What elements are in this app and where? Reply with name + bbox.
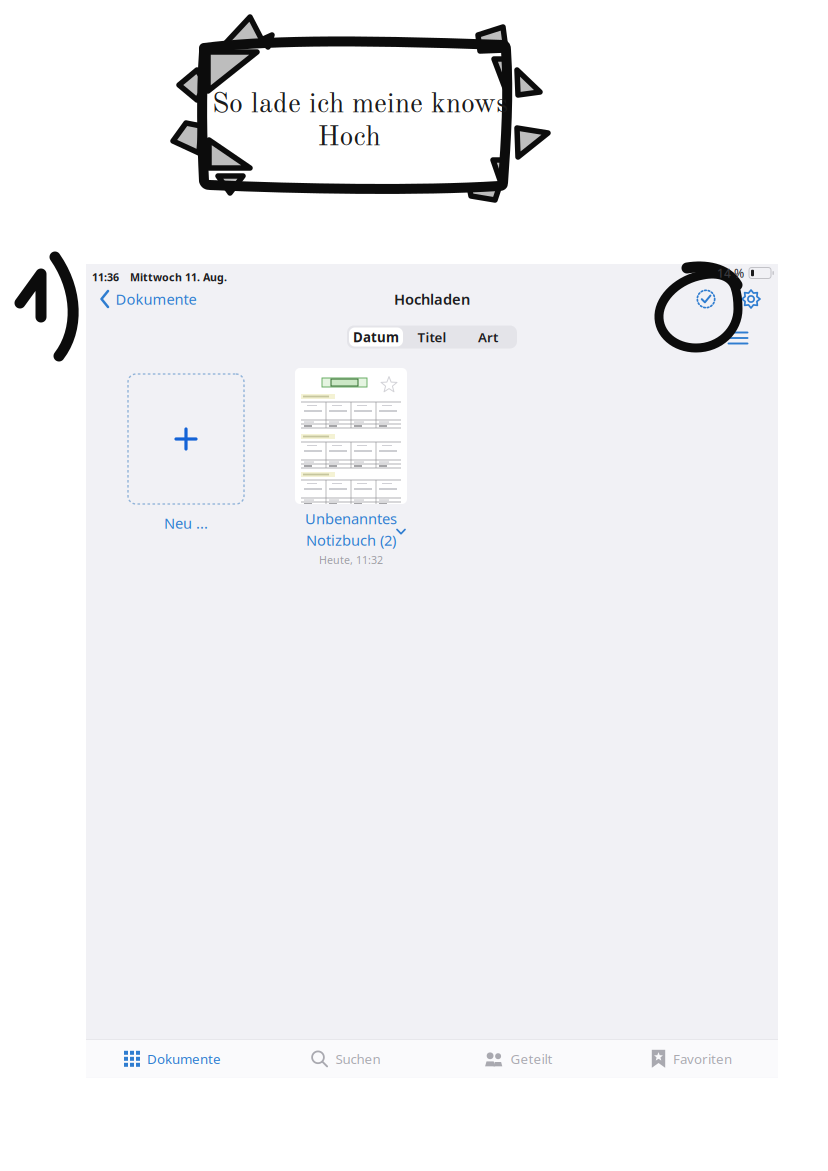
button[interactable]: Dokumente	[86, 1040, 259, 1078]
button[interactable]: Art	[460, 325, 516, 348]
staticText: Suchen	[335, 1050, 380, 1068]
button[interactable]: Titel	[404, 325, 460, 348]
staticText: Favoriten	[673, 1050, 732, 1068]
staticText: Titel	[417, 328, 446, 346]
button[interactable]: Darstellung	[721, 323, 754, 351]
staticText: Art	[478, 328, 498, 346]
staticText: Notizbuch (2)	[306, 530, 396, 550]
staticText: Mittwoch 11. Aug.	[130, 270, 227, 284]
button[interactable]: Einstellungen	[734, 282, 768, 316]
staticText: Dokumente	[147, 1050, 221, 1068]
staticText: Geteilt	[510, 1050, 552, 1068]
staticText: Datum	[353, 328, 399, 346]
button[interactable]: Dokumente	[93, 285, 202, 313]
button[interactable]: Neu ...	[156, 510, 216, 536]
button[interactable]: Unbenanntes	[281, 509, 421, 567]
staticText: Dokumente	[115, 289, 196, 309]
staticText: 11:36	[92, 270, 119, 284]
button[interactable]: Suchen	[259, 1040, 432, 1078]
staticText: Neu ...	[164, 513, 208, 533]
staticText: 14 %	[717, 265, 744, 281]
staticText: Heute, 11:32	[319, 553, 383, 567]
button[interactable]: Datum	[348, 325, 404, 348]
button[interactable]: Auswählen	[689, 282, 723, 316]
staticText: Hochladen	[394, 289, 470, 309]
button[interactable]: Geteilt	[432, 1040, 605, 1078]
staticText: Unbenanntes	[305, 509, 397, 528]
button[interactable]: Favoriten	[605, 1040, 778, 1078]
staticText: So lade ich meine knows	[212, 91, 508, 119]
button[interactable]	[128, 374, 244, 504]
staticText: Hoch	[317, 124, 380, 152]
button[interactable]	[295, 368, 407, 504]
